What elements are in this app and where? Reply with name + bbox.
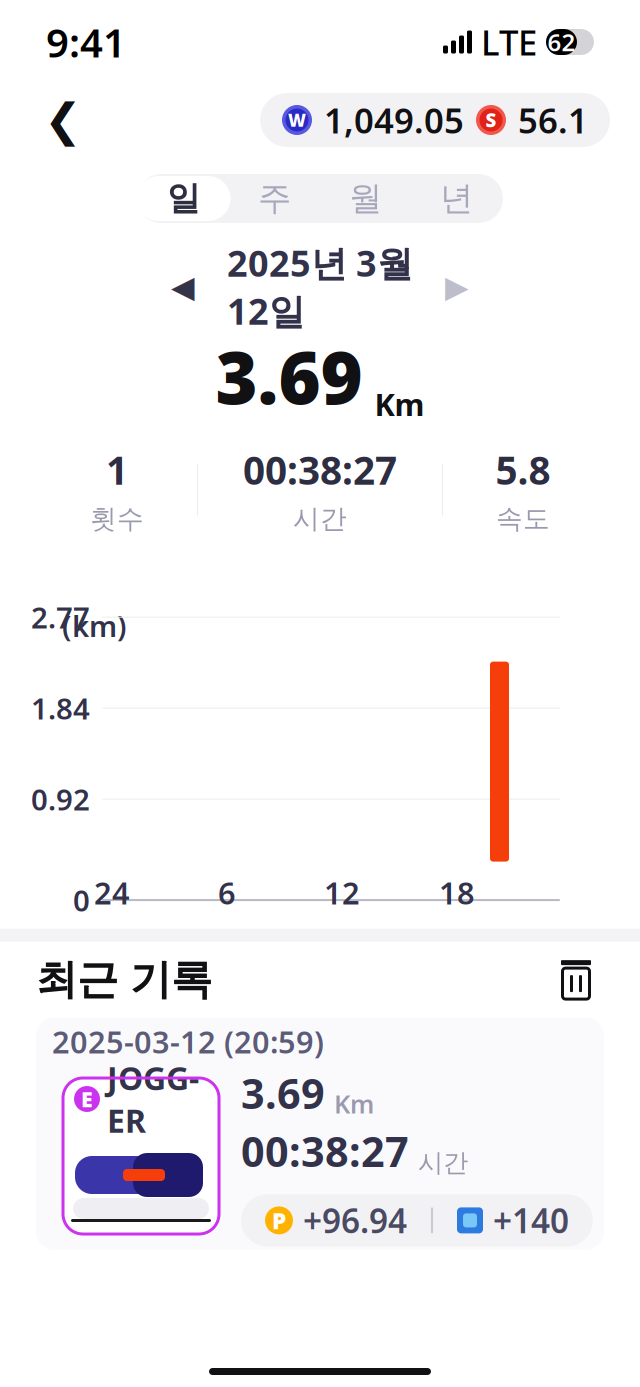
staticText: ❮ (44, 94, 82, 146)
staticText: (km) (62, 606, 127, 645)
button[interactable]: 월 (320, 174, 411, 223)
staticText: 1 (106, 444, 128, 495)
button[interactable]: 일 (138, 174, 229, 223)
button[interactable]: Next day (430, 262, 484, 312)
staticText: ◀ (171, 269, 195, 304)
staticText: 0.92 (31, 780, 90, 819)
staticText: 24 (94, 872, 130, 913)
button[interactable]: 2025-03-12 (20:59) (36, 1018, 604, 1250)
staticText: 최근 기록 (36, 954, 212, 1005)
staticText: +96.94 (303, 1198, 407, 1243)
staticText: W (288, 108, 306, 131)
staticText: 시간 (418, 1147, 468, 1178)
staticText: 1.84 (31, 689, 90, 728)
staticText: 00:38:27 (241, 1123, 409, 1178)
button[interactable]: Back (30, 87, 96, 153)
staticText: E (81, 1085, 93, 1113)
staticText: S (485, 108, 496, 132)
staticText: 횟수 (90, 502, 144, 535)
button[interactable]: Previous day (156, 262, 210, 312)
staticText: LTE (481, 19, 537, 65)
staticText: 주 (258, 178, 291, 219)
staticText: 시간 (293, 502, 347, 535)
staticText: 9:41 (46, 15, 126, 68)
staticText: 18 (439, 872, 475, 913)
staticText: 2025-03-12 (20:59) (52, 1021, 324, 1062)
staticText: 속도 (496, 502, 550, 535)
staticText: 5.8 (495, 444, 550, 495)
staticText: 3.69 (241, 1066, 325, 1120)
button[interactable]: 주 (229, 174, 320, 223)
staticText: 00:38:27 (243, 444, 397, 495)
staticText: 62 (547, 26, 575, 58)
button[interactable]: W (260, 93, 610, 147)
staticText: 2025년 3월 12일 (227, 239, 413, 335)
staticText: 56.1 (518, 97, 588, 143)
staticText: P (272, 1205, 286, 1235)
staticText: 2.77 (31, 598, 90, 637)
staticText: JOGGER (107, 1056, 199, 1141)
button[interactable]: Delete records (548, 952, 604, 1008)
staticText: Km (374, 384, 424, 424)
button[interactable]: 년 (411, 174, 502, 223)
staticText: ▶ (445, 269, 469, 304)
staticText: 6 (218, 872, 236, 913)
staticText: 월 (349, 178, 382, 219)
staticText: +140 (493, 1198, 569, 1243)
staticText: 1,049.05 (324, 97, 464, 143)
staticText: 0 (73, 881, 90, 920)
staticText: Km (334, 1087, 374, 1120)
staticText: 12 (324, 872, 360, 913)
staticText: 년 (440, 178, 473, 219)
staticText: 3.69 (215, 329, 362, 424)
staticText: 일 (167, 178, 200, 219)
